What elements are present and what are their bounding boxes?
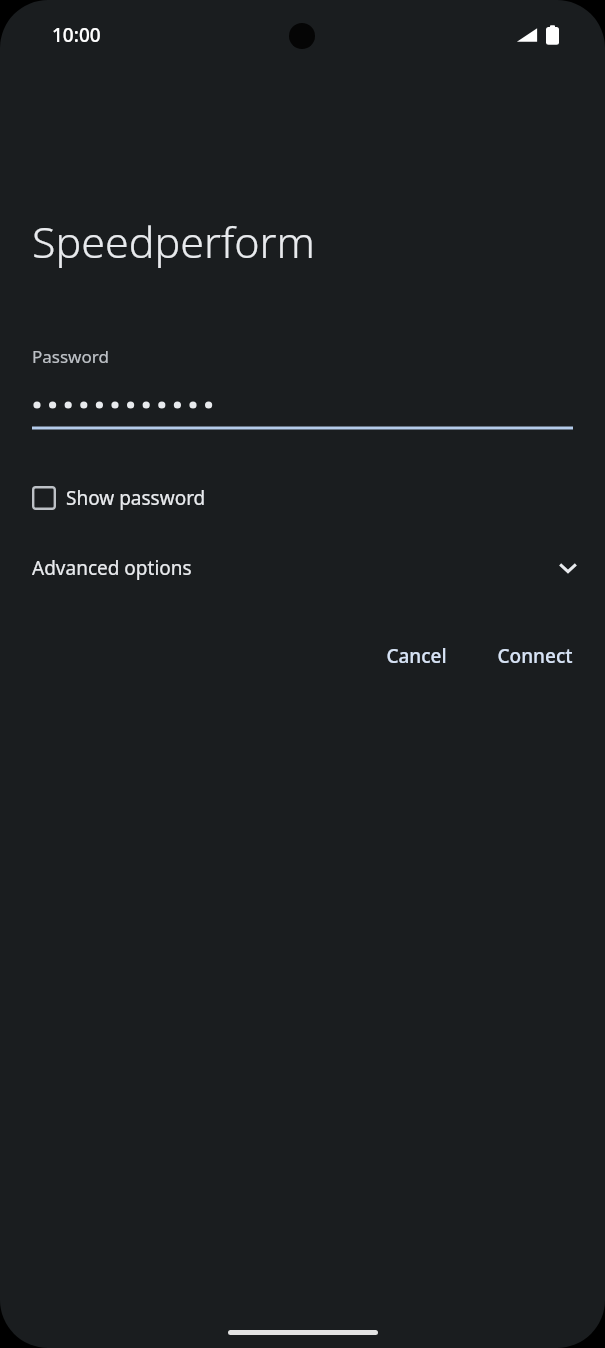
button[interactable]: Connect [481, 633, 589, 679]
button[interactable]: Cancel [370, 633, 463, 679]
staticText: Connect [497, 643, 573, 669]
button[interactable]: Advanced options [0, 547, 605, 589]
staticText: Show password [66, 485, 206, 511]
staticText: Speedperform [32, 212, 315, 271]
other: Expand advanced options [555, 555, 581, 581]
button[interactable]: Show password [26, 479, 218, 517]
staticText: Password [32, 345, 109, 368]
staticText: 10:00 [52, 22, 101, 48]
staticText: Advanced options [32, 555, 192, 581]
staticText: Cancel [386, 643, 447, 669]
button[interactable] [0, 390, 605, 434]
